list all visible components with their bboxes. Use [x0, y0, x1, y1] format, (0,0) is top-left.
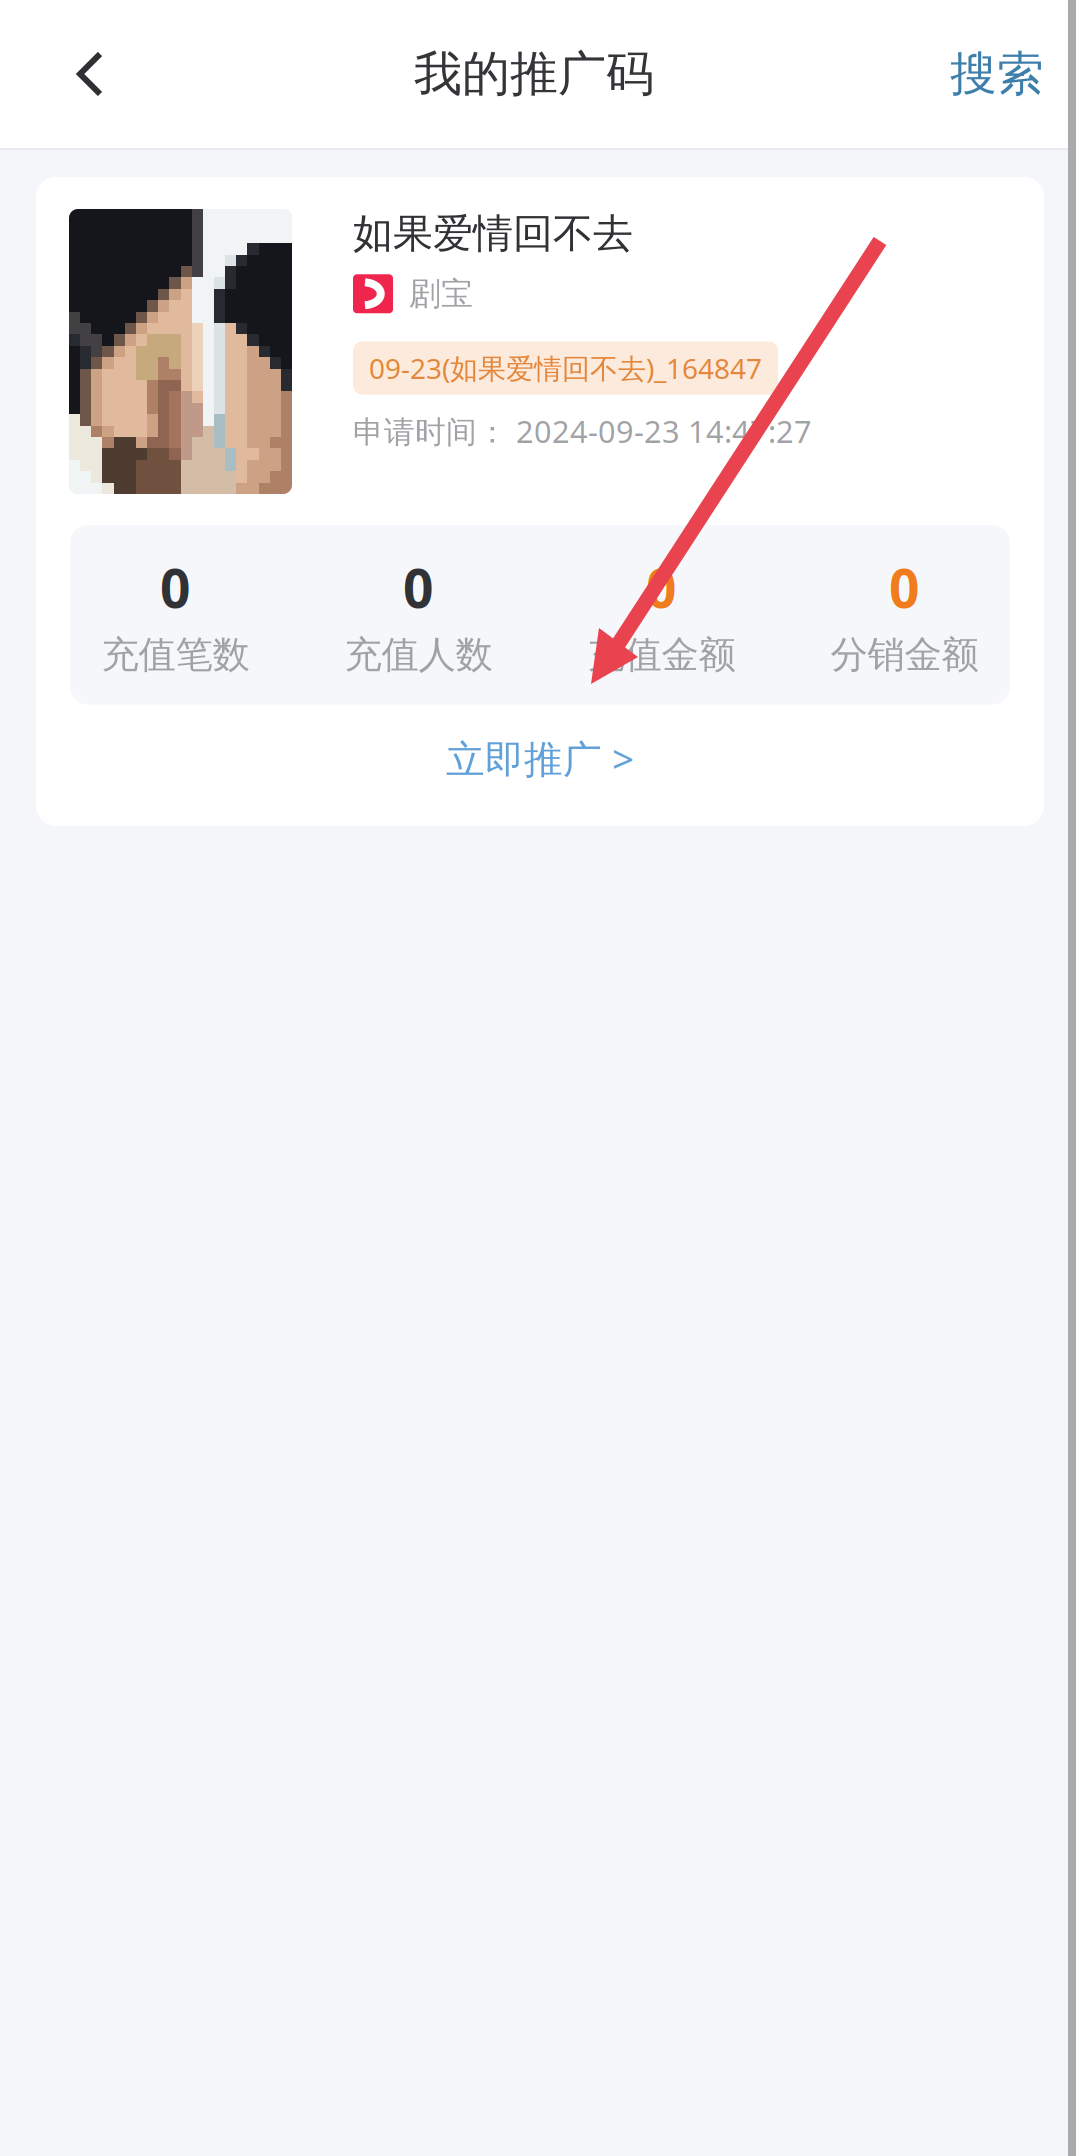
staticText: 0	[160, 552, 191, 623]
button[interactable]: 返回	[0, 0, 180, 148]
staticText: 申请时间： 2024-09-23 14:47:27	[353, 411, 812, 451]
staticText: 0	[403, 552, 434, 623]
staticText: 充值笔数	[101, 632, 249, 678]
staticText: 充值金额	[587, 632, 735, 678]
staticText: 剧宝	[409, 274, 473, 313]
staticText: 立即推广 >	[446, 733, 634, 784]
staticText: 我的推广码	[414, 44, 654, 103]
button[interactable]: 立即推广 >	[36, 707, 1044, 810]
staticText: 0	[646, 552, 677, 623]
staticText: 09-23(如果爱情回不去)_164847	[369, 349, 762, 387]
staticText: 0	[889, 552, 920, 623]
staticText: 充值人数	[344, 632, 492, 678]
button[interactable]: 搜索	[937, 0, 1057, 148]
staticText: 搜索	[950, 45, 1044, 103]
staticText: 分销金额	[830, 632, 978, 678]
staticText: 如果爱情回不去	[353, 209, 633, 258]
